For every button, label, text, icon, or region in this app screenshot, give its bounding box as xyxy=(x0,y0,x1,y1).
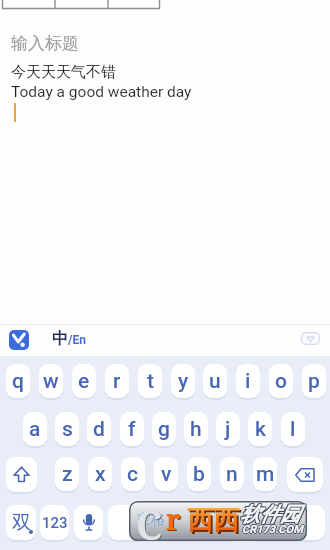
button[interactable]: r xyxy=(105,364,129,398)
staticText: a xyxy=(29,417,41,442)
button[interactable]: y xyxy=(171,364,195,398)
staticText: Today a good weather day xyxy=(11,83,192,101)
button[interactable]: x xyxy=(88,457,112,491)
button[interactable]: i xyxy=(236,364,260,398)
staticText: C xyxy=(136,498,163,550)
staticText: 西西 xyxy=(189,506,241,539)
button[interactable]: k xyxy=(248,412,272,446)
button[interactable]: b xyxy=(187,457,211,491)
staticText: q xyxy=(12,369,24,394)
button[interactable]: 中 xyxy=(52,329,68,349)
staticText: y xyxy=(178,369,189,394)
staticText: CR173.COM xyxy=(242,522,303,535)
staticText: 软件园 xyxy=(241,503,301,528)
button[interactable]: 双 xyxy=(6,505,36,540)
button[interactable] xyxy=(9,330,29,350)
staticText: u xyxy=(209,369,221,394)
staticText: 123 xyxy=(42,514,68,532)
staticText: l xyxy=(290,417,296,442)
staticText: v xyxy=(161,462,172,487)
button[interactable]: w xyxy=(39,364,63,398)
staticText: CR173.COM xyxy=(243,523,304,536)
button[interactable] xyxy=(247,505,325,540)
staticText: z xyxy=(62,462,73,487)
staticText: m xyxy=(256,462,275,487)
staticText: h xyxy=(190,417,202,442)
staticText: 软件园 xyxy=(240,501,300,526)
button[interactable] xyxy=(74,505,103,540)
staticText: k xyxy=(255,417,266,442)
button[interactable]: m xyxy=(253,457,277,491)
staticText: i xyxy=(245,369,251,394)
button[interactable]: 123 xyxy=(40,505,69,540)
staticText: s xyxy=(62,417,73,442)
staticText: CR173.COM xyxy=(241,523,302,536)
staticText: x xyxy=(95,462,106,487)
staticText: c xyxy=(127,462,139,487)
button[interactable]: d xyxy=(87,412,111,446)
staticText: r xyxy=(167,501,182,539)
staticText: 软件园 xyxy=(239,502,299,527)
staticText: t xyxy=(147,369,154,394)
button[interactable] xyxy=(301,332,320,345)
button[interactable]: c xyxy=(121,457,145,491)
staticText: b xyxy=(193,462,205,487)
button[interactable]: h xyxy=(184,412,208,446)
staticText: 软件园 xyxy=(241,501,301,526)
staticText: g xyxy=(158,417,170,442)
staticText: f xyxy=(128,417,136,442)
staticText: C xyxy=(137,499,164,550)
button[interactable] xyxy=(108,505,242,540)
staticText: e xyxy=(78,369,90,394)
staticText: p xyxy=(308,369,320,394)
button[interactable]: n xyxy=(220,457,244,491)
button[interactable] xyxy=(6,457,37,492)
button[interactable]: a xyxy=(23,412,47,446)
staticText: 软件园 xyxy=(239,501,299,526)
button[interactable]: g xyxy=(152,412,176,446)
staticText: 软件园 xyxy=(240,503,300,528)
staticText: r xyxy=(166,500,181,538)
button[interactable]: o xyxy=(269,364,293,398)
button[interactable]: q xyxy=(6,364,30,398)
button[interactable]: e xyxy=(72,364,96,398)
staticText: 西西 xyxy=(187,504,239,537)
staticText: w xyxy=(43,369,59,394)
staticText: r xyxy=(113,369,121,394)
staticText: 软件园 xyxy=(240,502,300,527)
staticText: 软件园 xyxy=(241,502,301,527)
button[interactable]: f xyxy=(120,412,144,446)
staticText: 软件园 xyxy=(239,503,299,528)
staticText: 输入标题 xyxy=(11,33,79,54)
button[interactable]: z xyxy=(55,457,79,491)
button[interactable]: j xyxy=(216,412,240,446)
staticText: CR173.COM xyxy=(242,524,303,537)
staticText: j xyxy=(225,417,231,442)
staticText: d xyxy=(93,417,105,442)
staticText: o xyxy=(275,369,287,394)
staticText: CR173.COM xyxy=(242,523,303,536)
staticText: /En xyxy=(68,333,86,347)
button[interactable]: v xyxy=(154,457,178,491)
staticText: 空格 xyxy=(137,511,165,529)
staticText: 双 xyxy=(12,511,31,535)
button[interactable]: l xyxy=(281,412,305,446)
button[interactable]: t xyxy=(138,364,162,398)
button[interactable]: p xyxy=(302,364,326,398)
staticText: n xyxy=(226,462,238,487)
staticText: 今天天天气不错 xyxy=(11,63,116,82)
button[interactable]: u xyxy=(203,364,227,398)
button[interactable]: s xyxy=(55,412,79,446)
button[interactable] xyxy=(287,457,323,492)
